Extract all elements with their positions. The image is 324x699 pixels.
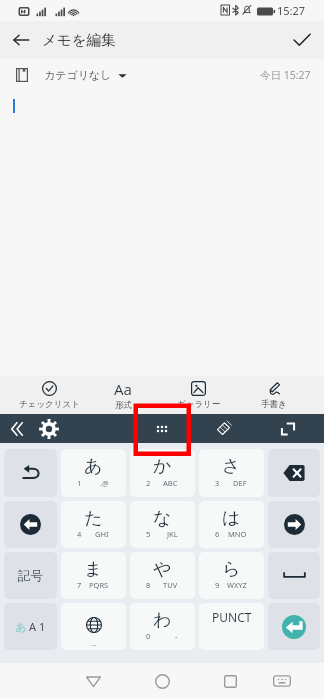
staticText: .@ [100,478,109,488]
button[interactable]: Enter [268,603,320,650]
staticText: た [84,507,103,530]
button[interactable]: Clipboard [203,414,243,443]
button[interactable]: Resize keyboard [268,414,308,443]
button[interactable]: わ [130,603,195,650]
button[interactable]: 手書き [236,376,311,414]
staticText: 手書き [261,399,287,410]
staticText: あ [84,455,103,478]
staticText: あ [15,620,27,634]
staticText: A [29,619,37,634]
staticText: か [153,455,172,478]
staticText: ら [222,558,241,581]
button[interactable]: さ [199,449,264,497]
button[interactable]: な [130,501,195,548]
button[interactable]: Recent apps [200,663,260,699]
button[interactable]: Switch input mode [4,603,57,650]
button[interactable]: Hide keyboard [256,663,308,699]
staticText: 8 [146,580,151,590]
staticText: ABC [163,478,178,488]
staticText: ギャラリー [177,399,221,410]
staticText: DEF [233,478,247,488]
button[interactable]: ギャラリー [161,376,236,414]
button[interactable]: Undo [4,449,57,497]
staticText: TUV [163,580,178,590]
button[interactable]: ら [199,552,264,599]
button[interactable]: Settings [31,414,67,443]
staticText: カテゴリなし [44,68,112,82]
staticText: PQRS [89,580,109,590]
button[interactable]: Move left [4,501,57,548]
button[interactable]: た [61,501,126,548]
button[interactable]: か [130,449,195,497]
staticText: は [222,507,241,530]
button[interactable]: Home [132,663,192,699]
staticText: 1 [77,478,82,488]
staticText: ま [84,558,103,581]
button[interactable]: Change language [61,603,126,650]
button[interactable]: Aa [86,376,161,414]
button[interactable]: Collapse keyboard [0,414,32,443]
staticText: 7 [77,580,82,590]
staticText: WXYZ [227,580,247,590]
button[interactable]: は [199,501,264,548]
staticText: や [153,558,172,581]
staticText: GHI [95,529,109,539]
staticText: Aa [114,379,133,399]
button[interactable]: Symbols [4,552,57,599]
staticText: 形式 [115,400,132,411]
staticText: 記号 [18,568,43,584]
button[interactable]: Delete [268,449,320,497]
button[interactable]: や [130,552,195,599]
staticText: ... [91,639,97,649]
button[interactable]: Move right [268,501,320,548]
staticText: わ [153,609,172,632]
staticText: 今日 15:27 [260,68,311,82]
staticText: PUNCT [212,609,252,625]
staticText: 4 [77,529,82,539]
staticText: - [175,631,178,641]
staticText: 6 [215,529,220,539]
staticText: 15:27 [277,3,306,18]
staticText: JKL [167,529,178,539]
staticText: 9 [215,580,220,590]
button[interactable]: Back [0,21,42,59]
button[interactable]: Space [268,552,320,599]
button[interactable]: More options [133,414,190,443]
button[interactable]: Back [63,663,123,699]
staticText: 2 [146,478,151,488]
staticText: MNO [228,529,247,539]
staticText: メモを編集 [42,31,116,49]
button[interactable]: ま [61,552,126,599]
staticText: 0 [146,631,151,641]
staticText: 5 [146,529,151,539]
staticText: 1 [39,619,46,634]
button[interactable]: Save [280,21,324,59]
staticText: な [153,507,172,530]
staticText: チェックリスト [19,399,80,410]
button[interactable]: チェックリスト [12,376,86,414]
button[interactable]: カテゴリなし [44,68,127,82]
staticText: さ [222,455,241,478]
staticText: 3 [215,478,220,488]
button[interactable]: PUNCT [199,603,264,650]
button[interactable]: あ [61,449,126,497]
